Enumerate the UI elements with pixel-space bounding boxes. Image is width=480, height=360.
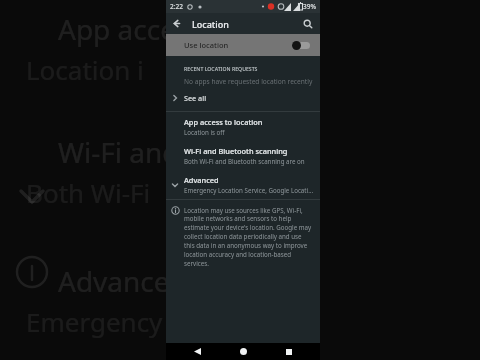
staticText: Both Wi-Fi and Bluetooth scanning are on bbox=[184, 157, 305, 165]
staticText: Location may use sources like GPS, Wi-Fi… bbox=[184, 206, 312, 268]
button[interactable]: Use location toggle bbox=[292, 40, 310, 51]
staticText: Use location bbox=[184, 40, 229, 50]
button[interactable]: Wi-Fi and Bluetooth scanning bbox=[166, 141, 320, 170]
staticText: App access to location bbox=[184, 117, 263, 127]
staticText: Both Wi-Fi bbox=[26, 175, 151, 210]
staticText: Advanced bbox=[184, 175, 219, 185]
staticText: Emergency Location Service, Google Locat… bbox=[184, 186, 315, 194]
staticText: 39% bbox=[303, 2, 316, 11]
staticText: Emergency bbox=[26, 304, 163, 339]
staticText: See all bbox=[184, 93, 207, 103]
staticText: 2:22 bbox=[170, 2, 183, 11]
button[interactable]: Recents bbox=[274, 343, 304, 360]
button[interactable]: App access to location bbox=[166, 112, 320, 141]
staticText: Location is off bbox=[184, 128, 225, 136]
staticText: RECENT LOCATION REQUESTS bbox=[184, 65, 258, 72]
button[interactable]: Back bbox=[182, 343, 212, 360]
staticText: Location bbox=[192, 18, 229, 30]
button[interactable]: Back bbox=[166, 13, 187, 34]
staticText: Wi-Fi and Bluetooth scanning bbox=[184, 146, 288, 156]
button[interactable]: Home bbox=[228, 343, 258, 360]
button[interactable]: Advanced bbox=[166, 170, 320, 199]
staticText: No apps have requested location recently bbox=[184, 77, 313, 86]
button[interactable]: Search bbox=[297, 13, 318, 34]
staticText: App acce bbox=[58, 10, 176, 48]
button[interactable]: Use location bbox=[166, 34, 320, 56]
button[interactable]: See all bbox=[166, 89, 320, 107]
staticText: Wi-Fi and bbox=[58, 133, 180, 171]
staticText: Advanced bbox=[58, 262, 187, 300]
staticText: Location i bbox=[26, 52, 144, 87]
